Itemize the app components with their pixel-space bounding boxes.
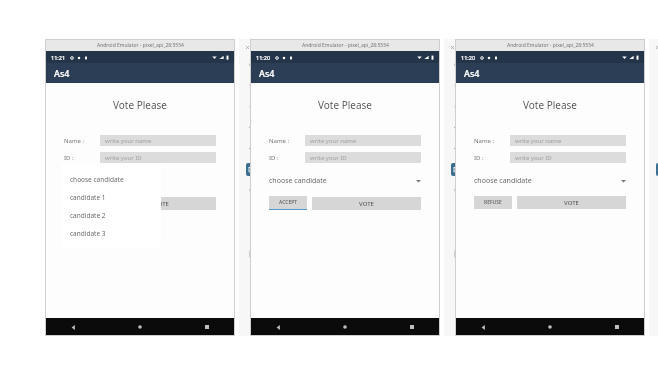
staticText: Name : (474, 137, 495, 145)
button[interactable]: Recent apps (447, 243, 467, 264)
staticText: candidate 2 (70, 211, 106, 220)
staticText: Vote Please (523, 98, 578, 112)
button[interactable]: Recent apps (200, 320, 214, 334)
staticText: As4 (259, 67, 275, 79)
staticText: ID : (269, 154, 279, 162)
button[interactable]: Power (447, 54, 467, 75)
staticText: Vote Please (113, 98, 168, 112)
staticText: choose candidate (269, 176, 327, 186)
button[interactable]: VOTE (517, 196, 626, 209)
staticText: Android Emulator - pixel_api_28:5554 (302, 42, 389, 49)
staticText: As4 (464, 67, 480, 79)
button[interactable]: Home (543, 320, 557, 334)
button[interactable]: Back (242, 201, 262, 222)
button[interactable]: More (447, 264, 467, 285)
button[interactable]: Recent apps (405, 320, 419, 334)
staticText: 11:21 (51, 54, 66, 61)
button[interactable]: ACCEPT (64, 196, 102, 209)
button[interactable]: Close (653, 43, 658, 51)
button[interactable]: ACCEPT (269, 196, 307, 209)
staticText: write your name (310, 137, 357, 145)
button[interactable]: VOTE (312, 197, 421, 210)
staticText: write your name (515, 137, 562, 145)
staticText: write your ID (105, 154, 142, 162)
staticText: Name : (64, 137, 85, 145)
button[interactable]: Volume down (242, 96, 262, 117)
staticText: write your ID (310, 154, 347, 162)
button[interactable]: Home (242, 222, 262, 243)
staticText: VOTE (564, 199, 579, 207)
staticText: Vote Please (318, 98, 373, 112)
button[interactable]: Home (133, 320, 147, 334)
button[interactable]: Take screenshot (242, 159, 262, 180)
button[interactable]: Close (448, 43, 456, 51)
staticText: 11:20 (256, 54, 271, 61)
button[interactable]: Back (66, 320, 80, 334)
staticText: write your name (105, 137, 152, 145)
staticText: VOTE (359, 200, 374, 208)
staticText: As4 (54, 67, 70, 79)
button[interactable]: More (242, 264, 262, 285)
staticText: ACCEPT (74, 199, 93, 206)
button[interactable]: Recent apps (242, 243, 262, 264)
button[interactable]: write your ID (305, 152, 421, 163)
staticText: candidate 3 (70, 229, 106, 238)
button[interactable]: write your ID (510, 152, 626, 163)
button[interactable]: Back (476, 320, 490, 334)
button[interactable]: candidate 2 (61, 206, 161, 224)
button[interactable]: write your name (100, 135, 216, 146)
button[interactable]: Rotate left (447, 117, 467, 138)
button[interactable]: Volume up (447, 75, 467, 96)
button[interactable]: Recent apps (610, 320, 624, 334)
button[interactable]: Zoom (447, 180, 467, 201)
button[interactable]: write your name (305, 135, 421, 146)
staticText: Android Emulator - pixel_api_28:5554 (507, 42, 594, 49)
button[interactable]: choose candidate (474, 174, 626, 188)
button[interactable]: Home (447, 222, 467, 243)
button[interactable]: Rotate right (447, 138, 467, 159)
button[interactable]: Volume up (242, 75, 262, 96)
staticText: VOTE (154, 200, 169, 208)
button[interactable]: REFUSE (474, 196, 512, 209)
staticText: choose candidate (474, 176, 532, 186)
staticText: choose candidate (70, 175, 124, 184)
button[interactable]: Back (271, 320, 285, 334)
button[interactable]: Rotate right (242, 138, 262, 159)
staticText: Android Emulator - pixel_api_28:5554 (97, 42, 184, 49)
button[interactable]: write your name (510, 135, 626, 146)
button[interactable]: Power (242, 54, 262, 75)
button[interactable]: Take screenshot (447, 159, 467, 180)
button[interactable]: candidate 3 (61, 224, 161, 242)
button[interactable]: write your ID (100, 152, 216, 163)
button[interactable]: VOTE (107, 197, 216, 210)
button[interactable]: candidate 1 (61, 188, 161, 206)
staticText: 11:20 (461, 54, 476, 61)
button[interactable]: Zoom (242, 180, 262, 201)
staticText: ACCEPT (279, 199, 298, 206)
button[interactable]: Back (447, 201, 467, 222)
staticText: write your ID (515, 154, 552, 162)
staticText: candidate 1 (70, 193, 106, 202)
staticText: ID : (474, 154, 484, 162)
button[interactable]: Take screenshot (652, 159, 658, 180)
button[interactable]: Volume down (447, 96, 467, 117)
button[interactable]: choose candidate (269, 174, 421, 188)
staticText: REFUSE (484, 199, 502, 206)
button[interactable]: Close (243, 43, 251, 51)
button[interactable]: Rotate left (242, 117, 262, 138)
button[interactable]: Home (338, 320, 352, 334)
button[interactable]: choose candidate (61, 170, 161, 188)
staticText: Name : (269, 137, 290, 145)
